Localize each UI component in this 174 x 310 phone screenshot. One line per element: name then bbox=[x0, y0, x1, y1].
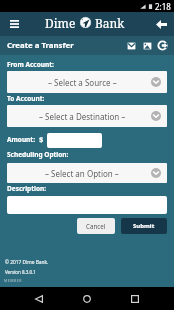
button[interactable]: Description bbox=[7, 196, 167, 214]
button[interactable]: Back bbox=[26, 287, 51, 310]
button[interactable]: – Select a Destination – bbox=[7, 105, 167, 127]
button[interactable]: – Select a Source – bbox=[7, 71, 167, 93]
button[interactable]: Amount bbox=[47, 133, 102, 148]
staticText: Submit bbox=[133, 222, 155, 230]
staticText: MEMBER bbox=[4, 278, 23, 283]
staticText: – Select a Source – bbox=[48, 77, 117, 88]
staticText: Bank bbox=[95, 15, 125, 31]
staticText: Version 8.3.0.1 bbox=[5, 269, 36, 275]
staticText: – Select a Destination – bbox=[39, 111, 126, 122]
button[interactable]: Compose message bbox=[125, 39, 138, 52]
staticText: Description: bbox=[7, 184, 47, 193]
button[interactable]: Open navigation menu bbox=[6, 17, 22, 31]
button[interactable]: Photos bbox=[141, 39, 154, 52]
button[interactable]: Log out bbox=[156, 39, 169, 52]
staticText: © 2017 Dime Bank. bbox=[5, 259, 49, 266]
staticText: Cancel bbox=[86, 222, 106, 230]
staticText: Create a Transfer bbox=[7, 40, 74, 51]
staticText: 2:18 bbox=[155, 1, 171, 12]
staticText: – Select an Option – bbox=[45, 168, 119, 179]
staticText: To Account: bbox=[7, 94, 45, 103]
staticText: From Account: bbox=[7, 60, 54, 69]
button[interactable]: Home bbox=[75, 287, 99, 310]
staticText: Amount: bbox=[7, 135, 35, 144]
button[interactable]: Back bbox=[154, 16, 169, 32]
button[interactable]: Submit bbox=[121, 218, 167, 234]
staticText: Scheduling Option: bbox=[7, 150, 69, 159]
button[interactable]: Recent apps bbox=[123, 287, 147, 310]
button[interactable]: – Select an Option – bbox=[7, 163, 167, 183]
button[interactable]: Cancel bbox=[77, 218, 115, 234]
staticText: $ bbox=[39, 134, 44, 144]
staticText: Dime bbox=[45, 15, 76, 31]
